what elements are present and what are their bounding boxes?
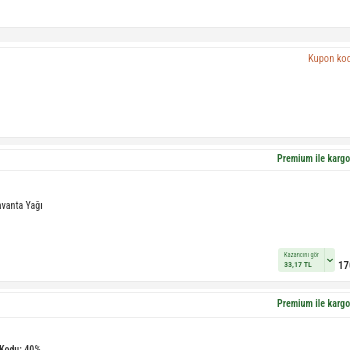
button[interactable]: Premium ile kargo bedava <box>0 296 350 312</box>
button[interactable]: Kupon kodu ile <box>301 52 350 64</box>
staticText: 170,00 TL <box>338 259 350 272</box>
other: Kazancını gör detayları <box>325 248 335 272</box>
button[interactable]: Premium ile kargo bedava <box>0 151 350 167</box>
staticText: Kodu: 40% <box>0 344 41 350</box>
staticText: 33,17 TL <box>284 260 312 269</box>
staticText: Premium ile kargo bedava <box>277 298 350 310</box>
staticText: Kazancını gör <box>284 251 319 259</box>
button[interactable]: Kazancını gör <box>278 248 335 272</box>
staticText: Kupon kodu ile <box>308 52 350 64</box>
staticText: Lavanta Yağı <box>0 200 43 212</box>
staticText: Premium ile kargo bedava <box>277 153 350 165</box>
